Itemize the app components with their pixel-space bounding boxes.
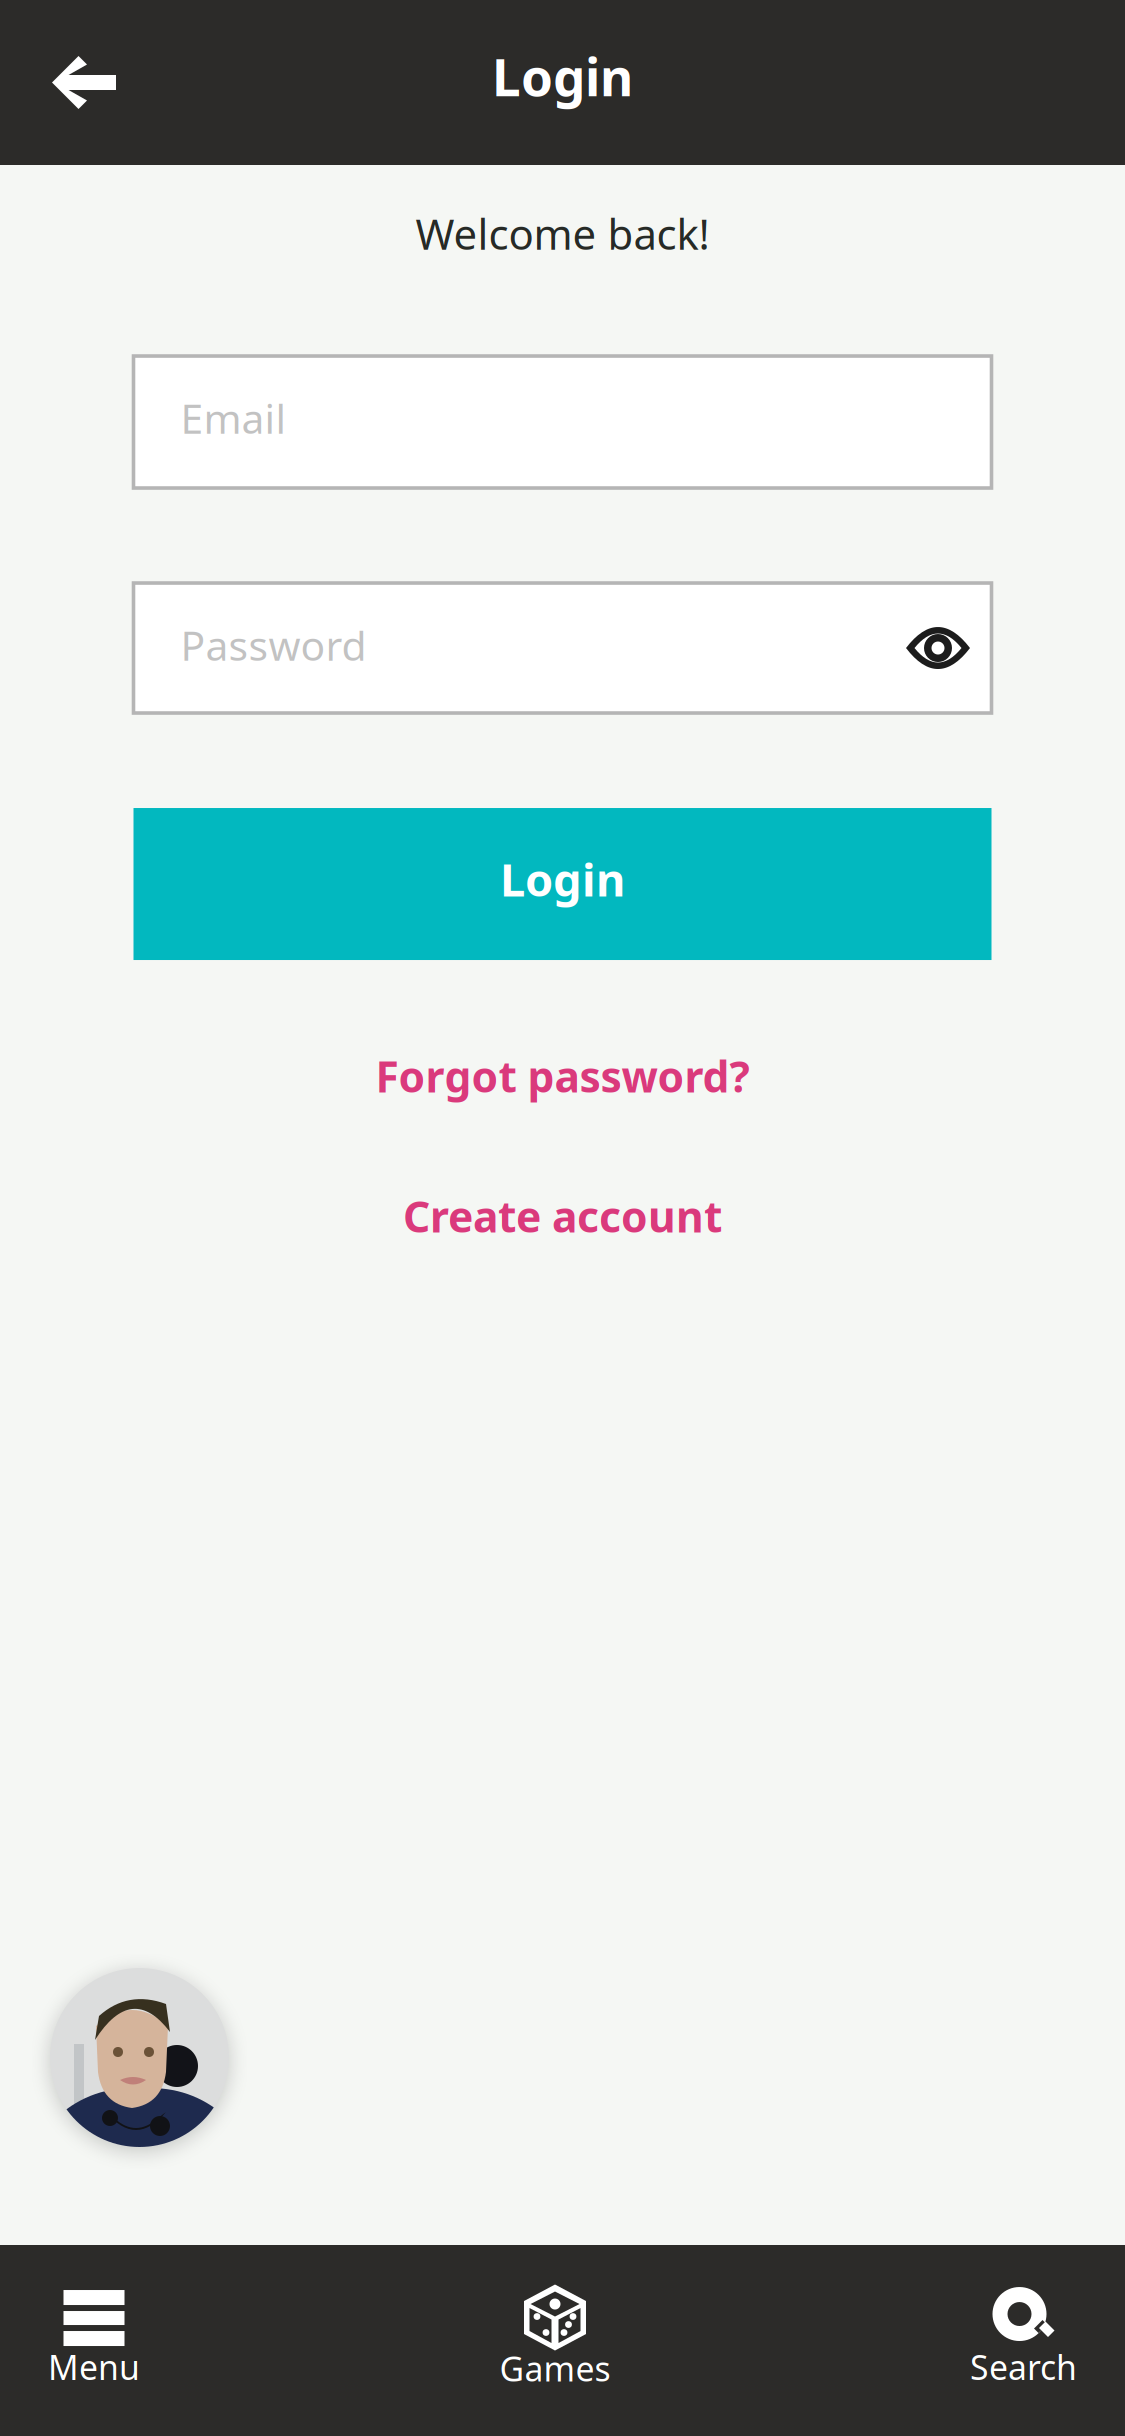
button[interactable]: Games bbox=[499, 2284, 610, 2396]
staticText: Email bbox=[180, 390, 286, 446]
staticText: Password bbox=[180, 617, 366, 673]
staticText: Menu bbox=[48, 2344, 140, 2390]
button[interactable]: Create account bbox=[377, 1173, 748, 1259]
button[interactable]: Menu bbox=[48, 2289, 140, 2392]
staticText: Forgot password? bbox=[375, 1047, 749, 1105]
staticText: Login bbox=[500, 848, 625, 910]
button[interactable]: Back bbox=[0, 34, 141, 131]
button[interactable]: Profile bbox=[50, 1968, 229, 2147]
button[interactable]: Forgot password? bbox=[349, 1033, 775, 1119]
staticText: Welcome back! bbox=[415, 205, 709, 262]
staticText: Search bbox=[970, 2344, 1077, 2390]
button[interactable]: Login bbox=[133, 808, 991, 960]
staticText: Login bbox=[492, 42, 633, 111]
staticText: Games bbox=[499, 2345, 610, 2391]
staticText: Create account bbox=[403, 1187, 722, 1245]
button[interactable]: Search bbox=[970, 2286, 1077, 2395]
button[interactable]: Show password bbox=[905, 624, 970, 672]
